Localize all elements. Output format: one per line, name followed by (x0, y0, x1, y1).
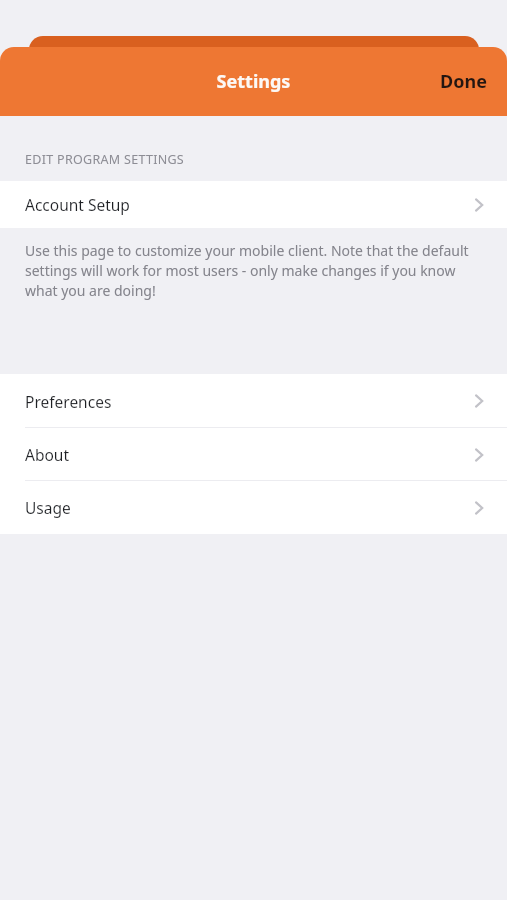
staticText: Usage (25, 497, 71, 518)
button[interactable]: Usage (0, 481, 507, 534)
button[interactable]: Account Setup (0, 181, 507, 228)
staticText: EDIT PROGRAM SETTINGS (25, 151, 185, 168)
button[interactable]: About (0, 428, 507, 481)
staticText: Done (440, 69, 487, 94)
staticText: Account Setup (25, 194, 130, 215)
staticText: Use this page to customize your mobile c… (25, 241, 472, 300)
button[interactable]: Preferences (0, 374, 507, 428)
button[interactable]: Done (420, 59, 507, 104)
staticText: Settings (0, 69, 507, 94)
staticText: Preferences (25, 391, 112, 412)
staticText: About (25, 444, 69, 465)
